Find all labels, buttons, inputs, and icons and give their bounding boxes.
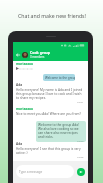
staticText: Hello everyone! My name is Ada and I joi…	[16, 88, 84, 100]
button[interactable]: Welcome to the group Ada! We also love c…	[36, 121, 86, 142]
staticText: Cook group	[30, 50, 51, 55]
button[interactable]: Send	[77, 168, 85, 176]
staticText: 3 members	[30, 55, 45, 59]
button[interactable]: Back	[14, 51, 21, 58]
staticText: Ada	[16, 142, 23, 146]
staticText: Hello everyone! I see that this group is…	[16, 147, 84, 155]
staticText: Ada	[16, 83, 23, 87]
staticText: mariaaaaa	[16, 62, 33, 66]
button[interactable]: Welcome to the group	[43, 74, 75, 81]
staticText: Welcome to the group	[45, 76, 75, 80]
staticText: 10:23	[77, 139, 84, 142]
staticText: Welcome to the group Ada! We also love c…	[38, 123, 84, 139]
staticText: Nice to meet you Ada! Where are you from…	[16, 112, 81, 116]
staticText: Chat and make new friends!	[18, 12, 86, 19]
staticText: Type a message	[19, 170, 43, 174]
staticText: mariaaaaa	[16, 107, 33, 111]
staticText: 10:21	[77, 100, 84, 103]
staticText: 10:25	[77, 155, 84, 158]
button[interactable]: Type a message	[16, 165, 74, 178]
